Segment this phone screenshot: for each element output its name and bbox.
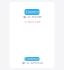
- staticText: Connect: [25, 10, 38, 14]
- staticText: Continue: [25, 57, 39, 61]
- staticText: Tap to connect: [22, 15, 41, 19]
- button[interactable]: Connect: [24, 9, 39, 15]
- button[interactable]: Continue: [24, 57, 39, 61]
- staticText: Tap to continue: [21, 61, 42, 65]
- staticText: No device found: [24, 20, 40, 23]
